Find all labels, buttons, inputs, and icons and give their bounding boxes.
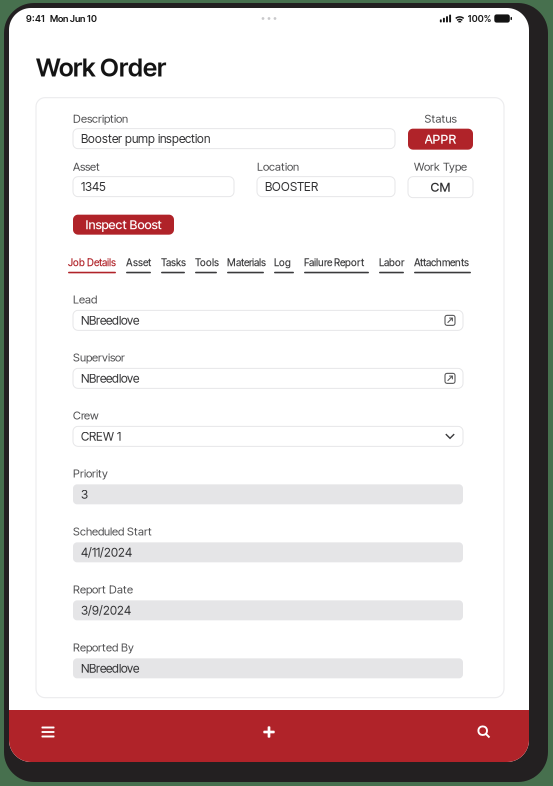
staticText: Work Order — [36, 52, 166, 83]
staticText: BOOSTER — [265, 179, 318, 194]
staticText: NBreedlove — [81, 371, 139, 386]
staticText: Lead — [73, 292, 97, 306]
staticText: 4/11/2024 — [81, 545, 132, 560]
button[interactable]: CM — [408, 177, 473, 198]
staticText: Reported By — [73, 640, 134, 654]
staticText: Scheduled Start — [73, 524, 152, 538]
staticText: Supervisor — [73, 350, 125, 364]
staticText: 3 — [81, 487, 88, 502]
button[interactable]: Attachments — [414, 257, 471, 273]
staticText: Inspect Boost — [85, 217, 161, 232]
button[interactable]: Add — [241, 711, 297, 753]
staticText: Priority — [73, 466, 108, 480]
staticText: Tools — [195, 257, 219, 269]
button[interactable]: APPR — [408, 129, 473, 150]
staticText: Attachments — [414, 257, 469, 269]
staticText: Job Details — [68, 257, 116, 269]
button[interactable]: Failure Report — [304, 257, 369, 273]
staticText: Materials — [227, 257, 266, 269]
button[interactable]: Tools — [195, 257, 217, 273]
staticText: Mon Jun 10 — [50, 13, 97, 24]
button[interactable]: Search — [456, 711, 512, 753]
staticText: Description — [73, 112, 128, 125]
staticText: Report Date — [73, 582, 133, 596]
staticText: APPR — [424, 131, 456, 147]
button[interactable]: Asset — [126, 257, 151, 273]
staticText: Failure Report — [304, 257, 364, 269]
staticText: CM — [430, 179, 450, 195]
staticText: Asset — [73, 160, 100, 173]
staticText: 9:41 — [26, 13, 45, 24]
staticText: Tasks — [161, 257, 186, 269]
button[interactable]: Labor — [379, 257, 404, 273]
staticText: Labor — [379, 257, 404, 269]
staticText: Status — [424, 112, 456, 125]
staticText: CREW 1 — [81, 429, 121, 444]
staticText: 1345 — [81, 179, 106, 194]
button[interactable]: Menu — [26, 711, 82, 753]
staticText: Booster pump inspection — [81, 131, 210, 146]
button[interactable]: Tasks — [161, 257, 185, 273]
button[interactable]: Inspect Boost — [73, 215, 174, 235]
button[interactable]: Log — [274, 257, 294, 273]
staticText: NBreedlove — [81, 661, 139, 676]
staticText: 100% — [468, 13, 492, 24]
staticText: Crew — [73, 408, 99, 422]
button[interactable]: Materials — [227, 257, 264, 273]
staticText: NBreedlove — [81, 313, 139, 328]
staticText: Asset — [126, 257, 151, 269]
button[interactable]: Job Details — [68, 257, 116, 273]
staticText: Work Type — [414, 160, 467, 173]
staticText: Log — [274, 257, 291, 269]
staticText: Location — [257, 160, 299, 173]
staticText: 3/9/2024 — [81, 603, 131, 618]
